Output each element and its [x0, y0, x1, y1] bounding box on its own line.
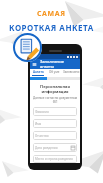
button[interactable]: Об уме [46, 69, 63, 77]
button[interactable]: Имя [33, 119, 77, 128]
staticText: Заполнение анкеты [40, 59, 78, 69]
staticText: КОРОТКАЯ АНКЕТА [9, 22, 94, 33]
staticText: Персональная информация [32, 84, 78, 94]
other: Меню [32, 62, 37, 67]
button[interactable]: Заключение [63, 69, 80, 77]
staticText: Дата рождения [35, 146, 71, 150]
staticText: Место и страна рождения [35, 157, 75, 161]
other: Выбрать дату [71, 146, 75, 150]
button[interactable]: Анкета [30, 69, 46, 77]
staticText: Отчество [35, 134, 75, 138]
staticText: Фамилия [35, 110, 75, 114]
button[interactable]: Место и страна рождения [33, 155, 77, 163]
staticText: Данные согласно документам ФЛ [32, 96, 78, 104]
staticText: Анкета [33, 70, 44, 74]
button[interactable]: Открыть анкету [13, 33, 42, 62]
staticText: Об уме [49, 70, 60, 74]
staticText: САМАЯ [37, 9, 66, 19]
button[interactable]: Фамилия [33, 107, 77, 116]
staticText: Заключение [63, 70, 80, 74]
staticText: Имя [35, 122, 75, 126]
button[interactable]: Дата рождения [33, 143, 77, 152]
button[interactable]: Меню [30, 59, 80, 69]
button[interactable]: Отчество [33, 131, 77, 140]
